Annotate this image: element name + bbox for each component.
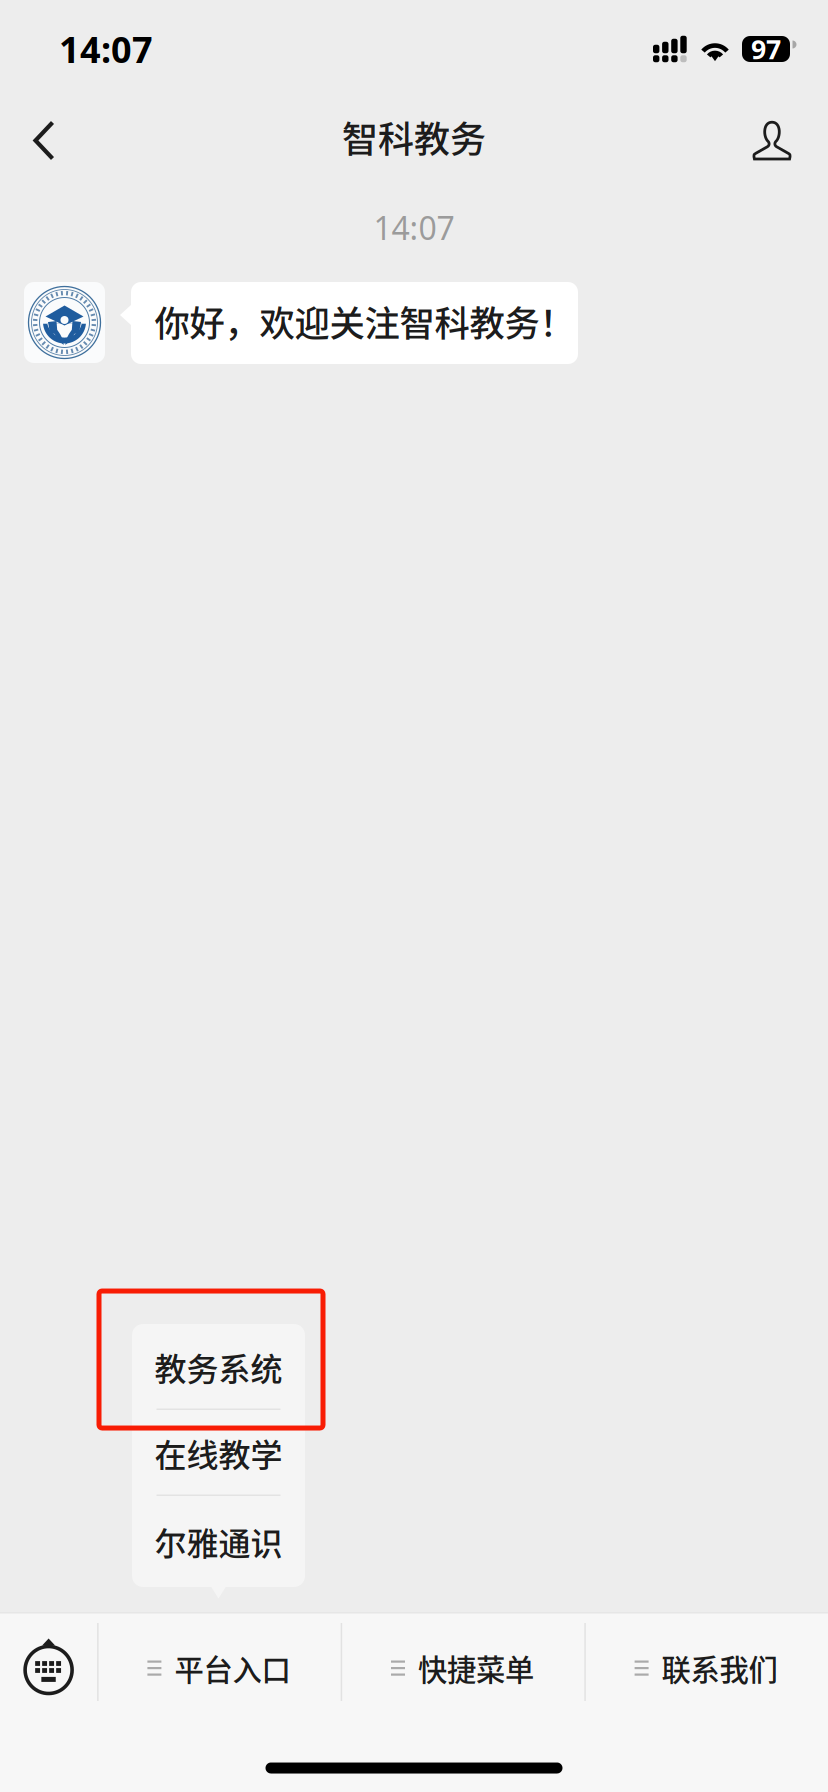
button[interactable]: Back [0, 91, 80, 183]
staticText: 教务系统 [154, 1344, 282, 1390]
staticText: 14:07 [373, 206, 454, 249]
button[interactable]: Keyboard [0, 1612, 97, 1712]
button[interactable]: 尔雅通识 [132, 1496, 305, 1587]
button[interactable]: 教务系统 [132, 1324, 305, 1410]
staticText: 你好，欢迎关注智科教务！ [154, 295, 574, 347]
staticText: 尔雅通识 [154, 1518, 282, 1565]
button[interactable]: Profile [728, 91, 828, 183]
button[interactable]: 联系我们 [584, 1612, 828, 1712]
staticText: 平台入口 [174, 1647, 290, 1689]
staticText: 快捷菜单 [418, 1647, 534, 1689]
staticText: 联系我们 [662, 1647, 778, 1689]
button[interactable]: 在线教学 [132, 1410, 305, 1496]
staticText: 14:07 [59, 25, 153, 73]
staticText: 97 [751, 31, 781, 67]
staticText: 在线教学 [154, 1430, 282, 1476]
staticText: 智科教务 [342, 111, 486, 163]
button[interactable]: 快捷菜单 [341, 1612, 584, 1712]
button[interactable]: 平台入口 [97, 1612, 341, 1712]
